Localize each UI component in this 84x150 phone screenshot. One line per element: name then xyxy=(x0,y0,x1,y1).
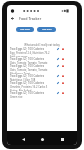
staticText: Two Eggs (2), 100 Calories xyxy=(10,57,45,61)
staticText: Green rice xyxy=(10,95,23,98)
button[interactable]: Edit xyxy=(56,57,60,61)
button[interactable]: Add meal xyxy=(16,27,34,32)
staticText: Two Eggs (2), 100 Calories xyxy=(10,47,45,51)
button[interactable]: Edit xyxy=(56,64,60,68)
staticText: Egg, Proteins12.6, Nutrition 76.2 xyxy=(10,51,50,55)
button[interactable]: Delete xyxy=(61,57,65,61)
button[interactable]: Recents xyxy=(58,135,66,143)
staticText: Two Eggs (2), 100 Calories xyxy=(10,81,45,85)
staticText: Oats, Tomato, Tomato, Tomato xyxy=(10,61,48,64)
staticText: Butter, Bits Salted xyxy=(10,89,32,91)
button[interactable]: Two Eggs (2), 100 Calories xyxy=(7,47,77,57)
staticText: Oats, Tomato, Tomato, Tomato xyxy=(10,68,48,72)
button[interactable]: Back xyxy=(7,14,17,23)
staticText: Two Eggs (2), 100 Calories xyxy=(10,74,45,78)
button[interactable]: Two Eggs (2), 100 Calories xyxy=(7,64,77,74)
button[interactable]: Add item xyxy=(37,27,56,32)
button[interactable]: Delete xyxy=(61,81,65,85)
staticText: Add: see more xyxy=(10,55,28,57)
button[interactable]: Two Eggs (2), 100 Calories xyxy=(7,74,77,81)
button[interactable]: Edit xyxy=(56,91,60,95)
button[interactable]: Edit xyxy=(56,47,60,51)
staticText: Two Eggs (2), 100 Calories xyxy=(10,64,45,68)
staticText: Nutritious / Slice 108 xyxy=(10,78,36,81)
staticText: Add item xyxy=(42,28,52,31)
button[interactable]: Two Eggs (2), 100 Calories xyxy=(7,81,77,91)
button[interactable]: Home xyxy=(38,135,46,143)
button[interactable]: Edit xyxy=(56,74,60,78)
staticText: Omelets, Proteins 16.2 Carbs 5 xyxy=(10,85,48,89)
button[interactable]: Two Eggs (2), 100 Calories xyxy=(7,91,77,98)
staticText: Add meal xyxy=(20,28,30,31)
staticText: What would I really eat today xyxy=(7,43,77,47)
staticText: Two Eggs (2), 100 Calories xyxy=(10,91,45,95)
button[interactable]: Two Eggs (2), 100 Calories xyxy=(7,57,77,64)
button[interactable]: Edit xyxy=(56,81,60,85)
button[interactable]: Back xyxy=(19,135,27,143)
staticText: Blackberry Toast xyxy=(10,72,31,74)
button[interactable]: Delete xyxy=(61,64,65,68)
button[interactable]: Delete xyxy=(61,74,65,78)
button[interactable]: Delete xyxy=(61,47,65,51)
button[interactable]: Delete xyxy=(61,91,65,95)
staticText: Food Tracker xyxy=(19,16,42,21)
